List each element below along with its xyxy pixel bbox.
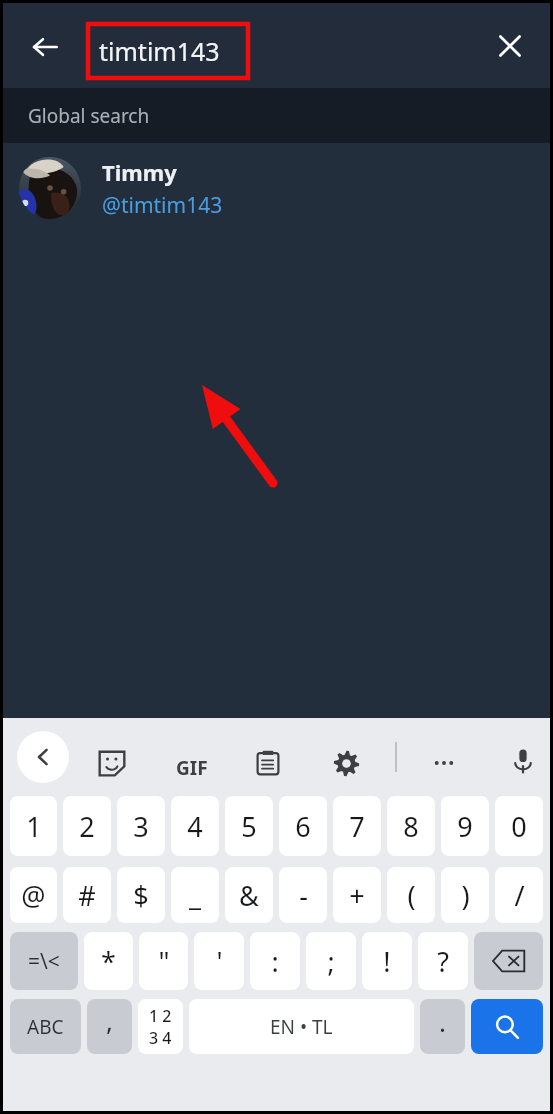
button[interactable]: ' (194, 932, 244, 990)
button[interactable]: Numbers (138, 999, 183, 1054)
button[interactable]: 7 (333, 796, 381, 856)
staticText: @ (21, 877, 46, 914)
button[interactable]: GIF (166, 742, 218, 794)
staticText: ' (216, 943, 223, 980)
button[interactable]: ? (418, 932, 468, 990)
button[interactable]: Backspace (474, 932, 543, 990)
button[interactable]: 5 (225, 796, 273, 856)
staticText: 6 (295, 808, 311, 845)
button[interactable]: 1 (10, 796, 57, 856)
button[interactable]: Search (471, 999, 543, 1054)
staticText: EN • TL (270, 1014, 333, 1040)
staticText: - (299, 877, 308, 914)
button[interactable]: ) (441, 867, 489, 923)
staticText: GIF (176, 755, 208, 781)
button[interactable]: Back (23, 25, 67, 69)
staticText: 3 (133, 808, 149, 845)
staticText: # (78, 877, 96, 914)
button[interactable]: 4 (171, 796, 219, 856)
staticText: ; (327, 943, 335, 980)
button[interactable]: * (84, 932, 133, 990)
button[interactable]: 6 (279, 796, 327, 856)
button[interactable]: ; (306, 932, 356, 990)
button[interactable]: : (250, 932, 300, 990)
button[interactable]: 9 (441, 796, 489, 856)
button[interactable]: " (139, 932, 188, 990)
staticText: 2 (79, 808, 95, 845)
staticText: ( (407, 877, 416, 914)
staticText: 1 2 (149, 1005, 172, 1027)
button[interactable]: & (225, 867, 273, 923)
staticText: 3 4 (149, 1027, 172, 1049)
button[interactable]: $ (117, 867, 165, 923)
staticText: Timmy (102, 157, 177, 187)
button[interactable]: 3 (117, 796, 165, 856)
staticText: $ (133, 877, 149, 914)
staticText: ) (461, 877, 470, 914)
button[interactable]: _ (171, 867, 219, 923)
staticText: , (106, 1003, 113, 1038)
button[interactable]: 0 (495, 796, 543, 856)
button[interactable]: =\< (10, 932, 78, 990)
staticText: _ (189, 877, 201, 914)
button[interactable]: More options (423, 742, 465, 784)
staticText: @timtim143 (102, 191, 223, 220)
staticText: / (514, 877, 525, 914)
staticText: ? (437, 943, 449, 980)
button[interactable]: ABC (10, 999, 81, 1054)
staticText: 9 (457, 808, 473, 845)
staticText: 1 (26, 808, 42, 845)
staticText: 7 (349, 808, 365, 845)
button[interactable]: Settings (325, 742, 367, 784)
button[interactable]: timtim143 (88, 24, 248, 78)
button[interactable]: 2 (63, 796, 111, 856)
staticText: ! (383, 943, 391, 980)
button[interactable]: ( (387, 867, 435, 923)
button[interactable]: Clear search (486, 22, 534, 70)
button[interactable]: . (420, 999, 465, 1054)
staticText: : (271, 943, 279, 980)
button[interactable]: - (279, 867, 327, 923)
button[interactable]: 8 (387, 796, 435, 856)
staticText: Global search (28, 103, 150, 129)
staticText: timtim143 (99, 34, 220, 68)
button[interactable]: EN • TL (189, 999, 414, 1054)
button[interactable]: Voice input (502, 740, 544, 782)
staticText: + (349, 877, 365, 914)
staticText: 5 (241, 808, 257, 845)
button[interactable]: , (87, 999, 132, 1054)
staticText: * (101, 943, 116, 980)
staticText: 8 (403, 808, 419, 845)
button[interactable]: + (333, 867, 381, 923)
button[interactable]: Clipboard (247, 742, 289, 784)
button[interactable]: / (495, 867, 543, 923)
button[interactable]: Stickers (91, 742, 133, 784)
staticText: =\< (28, 947, 60, 976)
button[interactable]: Back (17, 731, 69, 783)
staticText: . (439, 1004, 446, 1039)
staticText: 0 (511, 808, 527, 845)
staticText: & (239, 877, 259, 914)
button[interactable]: @ (10, 867, 57, 923)
button[interactable]: # (63, 867, 111, 923)
staticText: ABC (27, 1014, 64, 1040)
staticText: " (158, 943, 170, 980)
staticText: 4 (187, 808, 203, 845)
button[interactable]: Timmy (3, 143, 550, 233)
button[interactable]: ! (362, 932, 412, 990)
